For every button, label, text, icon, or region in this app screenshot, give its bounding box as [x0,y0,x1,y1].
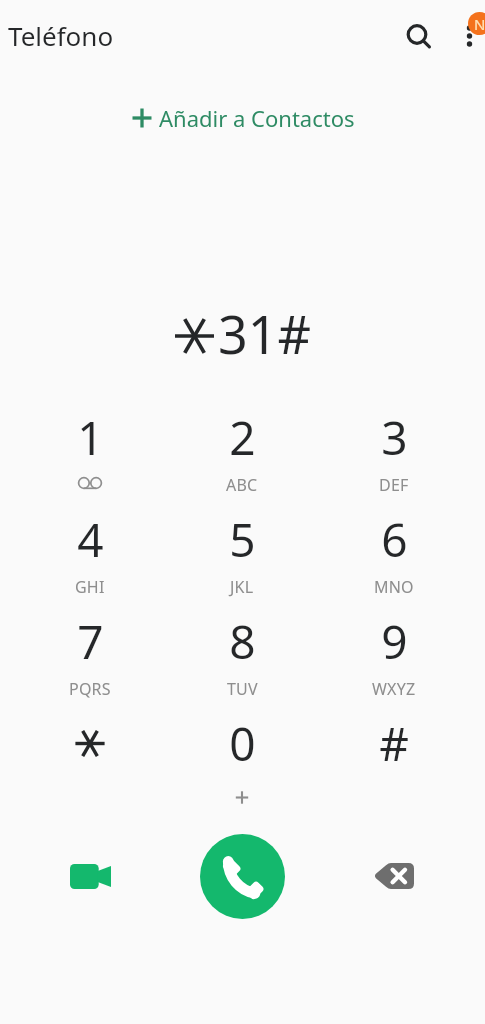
staticText: Teléfono [8,18,114,53]
staticText: 5 [229,508,256,564]
button[interactable]: 9 [344,610,444,705]
staticText: WXYZ [372,678,416,700]
button[interactable]: 3 [344,406,444,501]
staticText: 2 [229,406,256,462]
staticText: TUV [227,678,258,700]
staticText: 0 [229,712,256,768]
button[interactable]: 8 [192,610,292,705]
staticText: N [474,14,485,34]
button[interactable]: # [344,712,444,807]
staticText: MNO [374,576,414,598]
staticText: DEF [379,474,409,496]
button[interactable]: Delete [354,836,434,916]
staticText: 3 [381,406,408,462]
button[interactable]: Search [392,10,440,58]
staticText: PQRS [69,678,111,700]
button[interactable]: 2 [192,406,292,501]
button[interactable]: Video call [50,836,130,916]
button[interactable]: 5 [192,508,292,603]
button[interactable]: 1 [40,406,140,501]
staticText: JKL [230,576,254,598]
staticText: GHI [75,576,105,598]
staticText: 31# [218,298,312,368]
button[interactable]: 0 [192,712,292,807]
staticText: 8 [229,610,256,666]
button[interactable]: 7 [40,610,140,705]
staticText: Añadir a Contactos [159,103,355,133]
staticText: # [379,712,409,768]
button[interactable]: 4 [40,508,140,603]
staticText: 9 [381,610,408,666]
staticText: 1 [77,406,104,462]
button[interactable]: More options [446,12,485,60]
button[interactable]: Call [200,834,285,919]
button[interactable] [40,712,140,807]
staticText: 7 [77,610,104,666]
staticText: ABC [226,474,258,496]
button[interactable]: 6 [344,508,444,603]
staticText: 6 [381,508,408,564]
staticText: 4 [77,508,104,564]
button[interactable]: Añadir a Contactos [0,99,485,137]
